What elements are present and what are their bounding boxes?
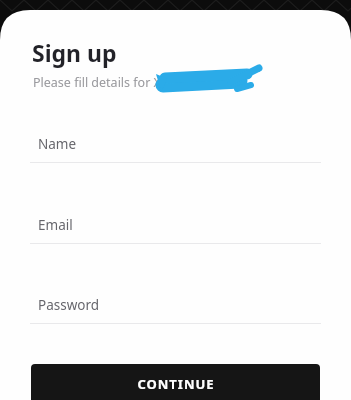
staticText: Email — [38, 216, 73, 234]
button[interactable]: CONTINUE — [31, 364, 320, 400]
staticText: CONTINUE — [137, 375, 215, 393]
button[interactable]: Email — [30, 216, 321, 245]
staticText: Please fill details for X — [33, 74, 161, 91]
button[interactable]: Password — [30, 296, 321, 325]
staticText: Password — [38, 296, 100, 314]
staticText: Name — [38, 135, 77, 153]
staticText: Sign up — [32, 37, 117, 68]
button[interactable]: Name — [30, 135, 321, 164]
